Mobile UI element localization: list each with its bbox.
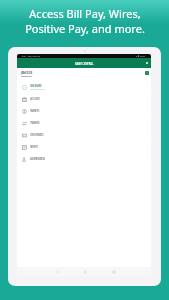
button[interactable]: TRANSFERS <box>17 117 151 129</box>
button[interactable]: ADMINISTRATION <box>17 153 151 165</box>
button[interactable]: REPORTS <box>17 141 151 153</box>
button[interactable]: ACCOUNTS <box>17 93 151 105</box>
button[interactable]: Home <box>82 269 88 275</box>
staticText: ADMINISTRATION <box>30 157 45 161</box>
button[interactable]: CHECK SERVICES <box>17 129 151 141</box>
button[interactable]: PAYMENTS <box>17 105 151 117</box>
button[interactable]: Close <box>143 59 151 67</box>
button[interactable]: Back <box>55 269 61 275</box>
staticText: Last login: 05/21/2021 - 10:45 <box>21 75 32 78</box>
staticText: ACCOUNTS <box>30 97 40 101</box>
staticText: REPORTS <box>30 145 38 149</box>
staticText: DASHBOARD <box>30 84 42 88</box>
staticText: JANE DOE <box>21 70 33 74</box>
button[interactable]: Recent apps <box>111 269 117 275</box>
staticText: Access Bill Pay, Wires, <box>29 6 141 21</box>
staticText: ▴ ▮ 100% <box>136 55 146 58</box>
staticText: 9:41 Thu, May 23 <box>22 55 40 58</box>
staticText: BANK CENTRAL <box>75 62 94 65</box>
staticText: TRANSFERS <box>30 121 40 125</box>
button[interactable]: Messages <box>145 71 149 75</box>
button[interactable]: DASHBOARD <box>17 81 151 93</box>
staticText: CHECK SERVICES <box>30 133 44 137</box>
staticText: Positive Pay, and more. <box>25 21 145 36</box>
staticText: PAYMENTS <box>30 109 39 113</box>
